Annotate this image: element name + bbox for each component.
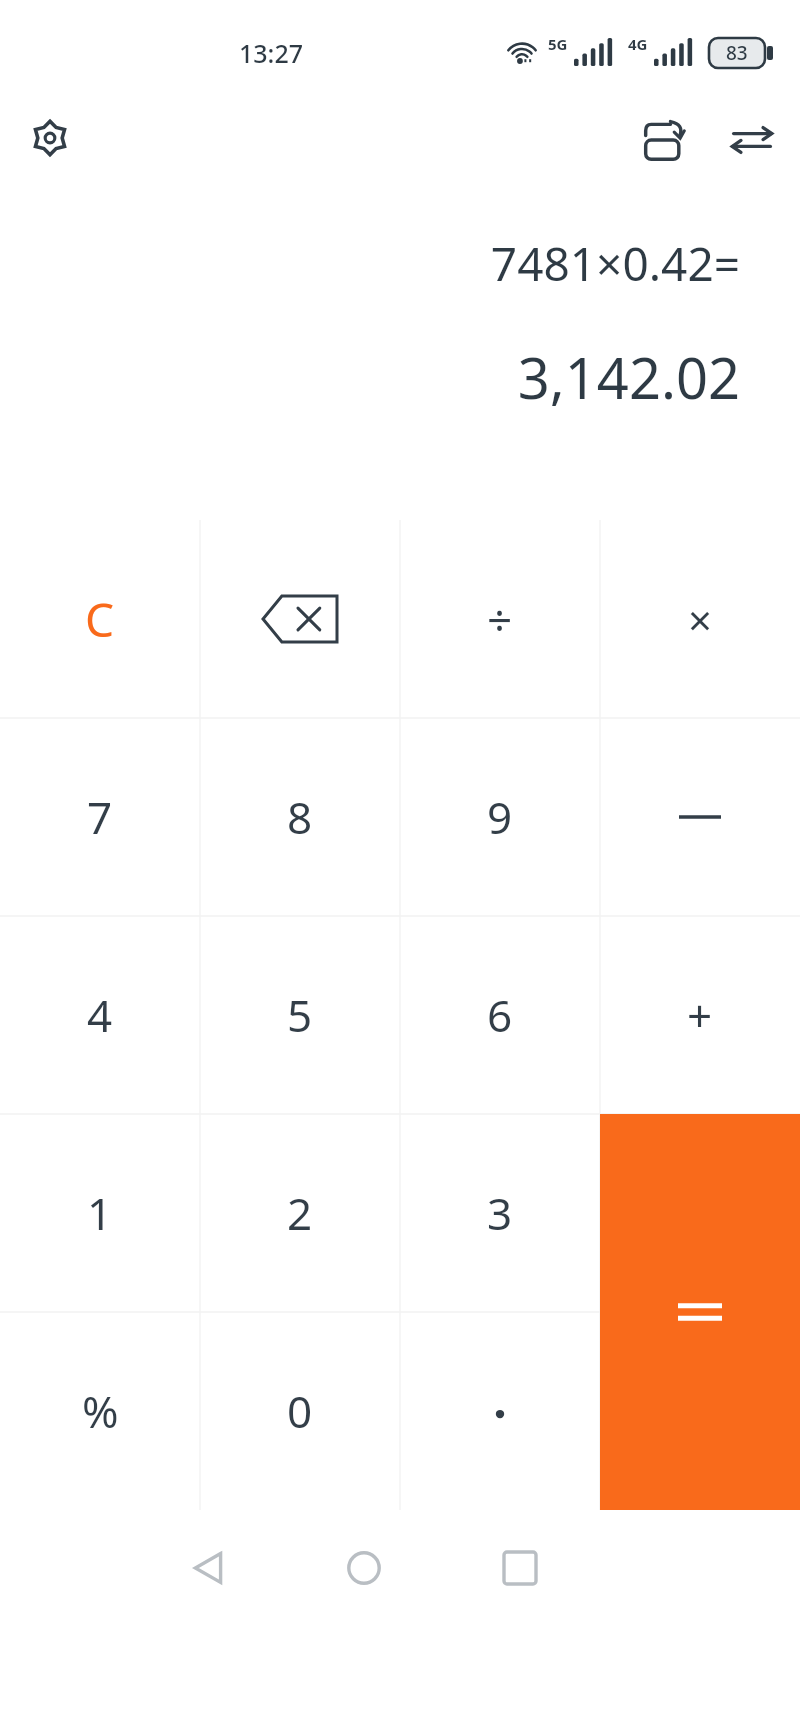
staticText: 5G xyxy=(548,34,568,54)
staticText: C xyxy=(85,588,115,651)
button[interactable]: 9 xyxy=(400,718,600,916)
button[interactable]: Recent apps xyxy=(484,1532,556,1604)
staticText: 5 xyxy=(287,985,313,1045)
staticText: 13:27 xyxy=(239,36,304,70)
button[interactable]: Minus xyxy=(600,718,800,916)
staticText: 3,142.02 xyxy=(517,339,740,415)
button[interactable]: + xyxy=(600,916,800,1114)
staticText: 4 xyxy=(87,985,113,1045)
staticText: × xyxy=(688,591,713,648)
staticText: + xyxy=(687,985,713,1045)
staticText: 6 xyxy=(487,985,513,1045)
staticText: ÷ xyxy=(487,589,513,649)
button[interactable]: Settings xyxy=(14,102,86,174)
button[interactable]: Backspace xyxy=(200,520,400,718)
button[interactable]: Decimal point xyxy=(400,1312,600,1510)
button[interactable]: 1 xyxy=(0,1114,200,1312)
staticText: 83 xyxy=(726,40,748,66)
button[interactable]: Home xyxy=(328,1532,400,1604)
button[interactable]: 0 xyxy=(200,1312,400,1510)
staticText: % xyxy=(82,1381,119,1441)
staticText: 9 xyxy=(487,787,513,847)
button[interactable]: Back xyxy=(172,1532,244,1604)
staticText: 2 xyxy=(287,1183,313,1243)
button[interactable]: 8 xyxy=(200,718,400,916)
button[interactable]: % xyxy=(0,1312,200,1510)
button[interactable]: × xyxy=(600,520,800,718)
button[interactable]: 4 xyxy=(0,916,200,1114)
button[interactable]: ÷ xyxy=(400,520,600,718)
button[interactable]: 7 xyxy=(0,718,200,916)
staticText: 7481×0.42= xyxy=(490,232,740,295)
button[interactable]: 5 xyxy=(200,916,400,1114)
button[interactable]: C xyxy=(0,520,200,718)
button[interactable]: Convert xyxy=(629,104,701,176)
button[interactable]: Swap xyxy=(716,104,788,176)
staticText: 7 xyxy=(87,787,113,847)
staticText: 4G xyxy=(628,34,648,54)
button[interactable]: 3 xyxy=(400,1114,600,1312)
staticText: 0 xyxy=(287,1381,313,1441)
staticText: 8 xyxy=(287,787,313,847)
button[interactable] xyxy=(600,1114,800,1510)
button[interactable]: 6 xyxy=(400,916,600,1114)
button[interactable]: 2 xyxy=(200,1114,400,1312)
staticText: 3 xyxy=(487,1183,513,1243)
staticText: 1 xyxy=(87,1183,113,1243)
